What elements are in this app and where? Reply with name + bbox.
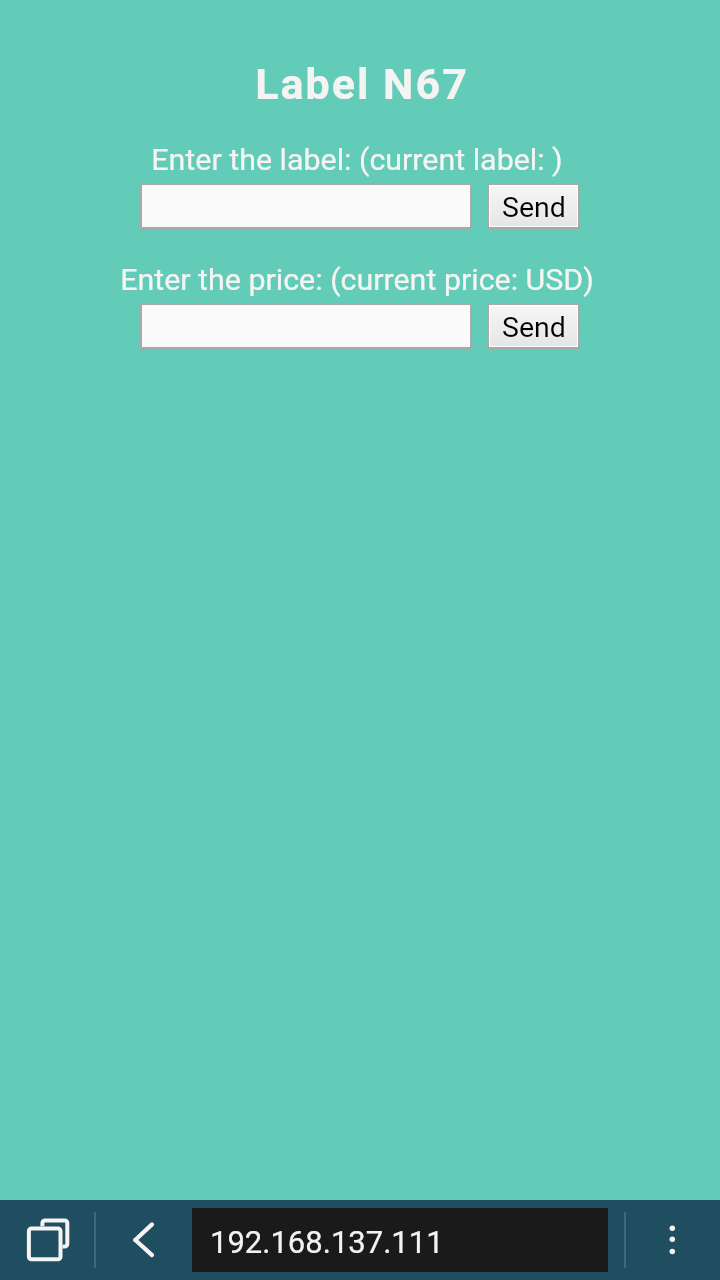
button[interactable]: Send [487,183,580,229]
button[interactable]: Price input [140,303,472,349]
staticText: Label N67 [255,59,469,109]
button[interactable]: 192.168.137.111 [192,1208,608,1272]
staticText: Enter the price: (current price: USD) [120,262,594,298]
button[interactable]: Send [487,303,580,349]
staticText: Send [502,311,566,344]
button[interactable]: Tabs [10,1208,74,1272]
button[interactable]: Back [112,1212,168,1268]
staticText: Enter the label: (current label: ) [151,142,563,178]
staticText: 192.168.137.111 [210,1224,444,1260]
staticText: Send [502,191,566,224]
button[interactable]: Label input [140,183,472,229]
button[interactable]: More options [644,1208,702,1266]
